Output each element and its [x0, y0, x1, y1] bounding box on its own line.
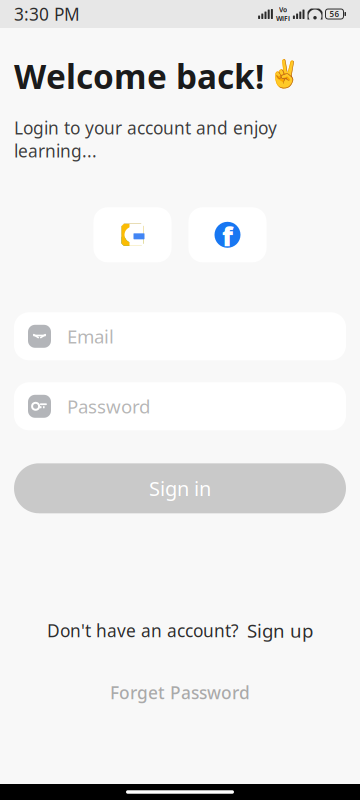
staticText: Login to your account and enjoy learning… [14, 116, 277, 162]
button[interactable]: Forget Password [14, 681, 346, 704]
button[interactable]: Email [14, 312, 346, 360]
button[interactable]: Sign in with Google [93, 207, 171, 262]
staticText: 56 [329, 9, 339, 19]
staticText: f [222, 218, 233, 253]
staticText: ✌️ [268, 59, 301, 89]
staticText: Email [67, 324, 114, 349]
staticText: 3:30 PM [14, 2, 80, 25]
staticText: Password [67, 394, 150, 419]
staticText: Don't have an account? [47, 619, 239, 642]
button[interactable]: Don't have an account? [14, 618, 346, 643]
staticText: Forget Password [110, 681, 250, 704]
staticText: Vo [279, 5, 287, 14]
staticText: Sign up [247, 618, 313, 643]
button[interactable]: Sign in with Facebook [188, 207, 266, 262]
staticText: WiFi [276, 14, 290, 23]
staticText: Welcome back! [14, 54, 264, 98]
button[interactable]: Sign in [14, 463, 346, 513]
button[interactable]: Password [14, 382, 346, 430]
staticText: Sign in [149, 475, 211, 502]
